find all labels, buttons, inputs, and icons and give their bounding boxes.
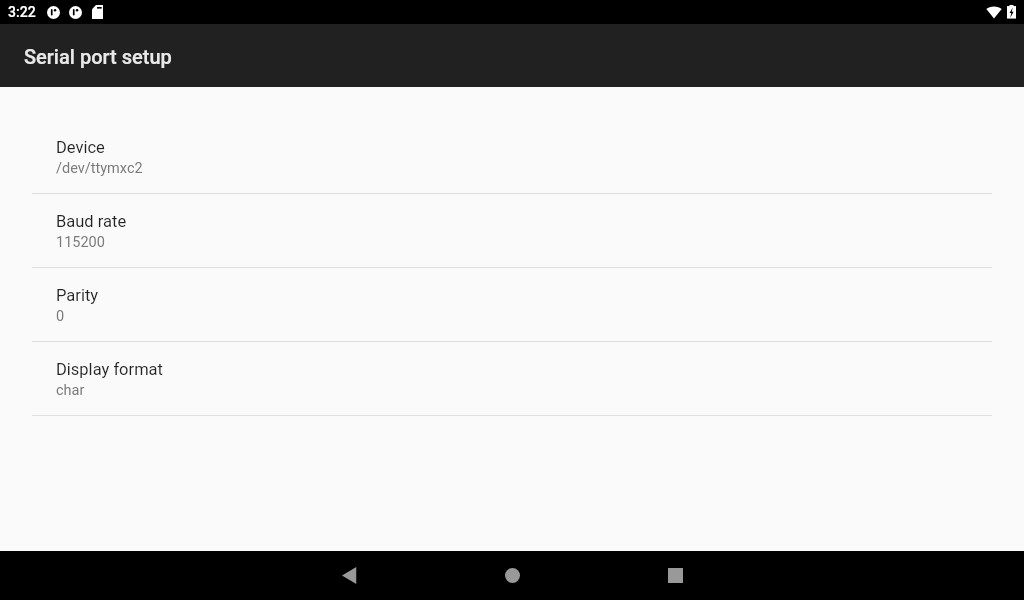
staticText: 115200 bbox=[56, 234, 105, 251]
staticText: /dev/ttymxc2 bbox=[56, 160, 143, 177]
staticText: 0 bbox=[56, 308, 65, 325]
button[interactable]: Parity bbox=[0, 268, 1024, 342]
button[interactable]: Recent apps bbox=[594, 551, 757, 600]
button[interactable]: Back bbox=[268, 551, 431, 600]
staticText: Display format bbox=[56, 360, 163, 379]
staticText: Parity bbox=[56, 286, 99, 305]
staticText: Serial port setup bbox=[24, 45, 172, 68]
staticText: Baud rate bbox=[56, 212, 127, 231]
staticText: Device bbox=[56, 138, 105, 157]
button[interactable]: Home bbox=[431, 551, 594, 600]
button[interactable]: Display format bbox=[0, 342, 1024, 416]
staticText: char bbox=[56, 382, 85, 399]
button[interactable]: Device bbox=[0, 120, 1024, 194]
button[interactable]: Baud rate bbox=[0, 194, 1024, 268]
staticText: 3:22 bbox=[8, 4, 36, 20]
